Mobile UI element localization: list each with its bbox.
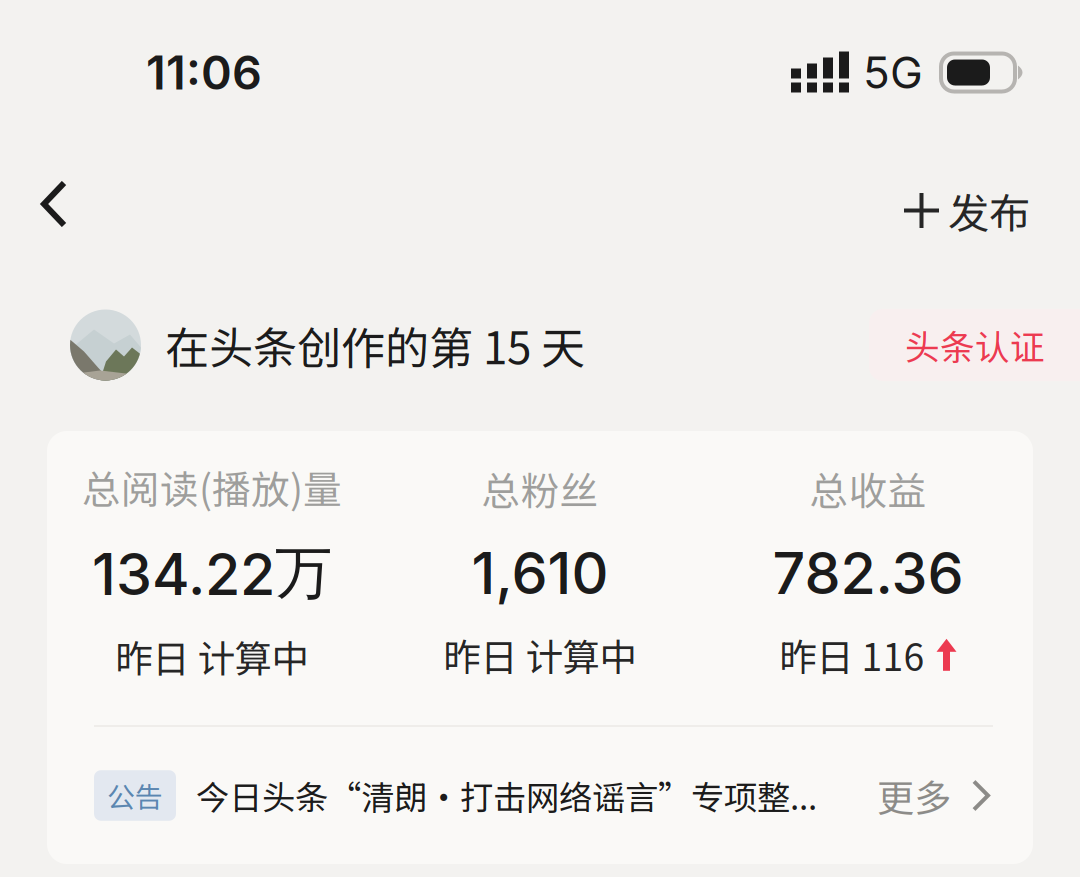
staticText: 总收益 [809, 460, 926, 516]
staticText: 今日头条“清朗·打击网络谣言”专项整... [196, 771, 817, 820]
button[interactable]: 公告 [47, 727, 1033, 864]
staticText: 总粉丝 [481, 460, 598, 516]
staticText: 总阅读(播放)量 [82, 459, 342, 515]
button[interactable]: 发布 [904, 154, 1080, 254]
staticText: 昨日 计算中 [115, 629, 308, 683]
staticText: 公告 [107, 775, 163, 816]
staticText: 134.22万 [92, 537, 332, 609]
staticText: 昨日 116 [779, 628, 924, 682]
staticText: 头条认证 [905, 320, 1045, 370]
staticText: 更多 [877, 768, 951, 823]
button[interactable]: Back [0, 154, 101, 254]
staticText: 在头条创作的第 15 天 [165, 313, 585, 377]
staticText: 发布 [948, 181, 1030, 240]
staticText: 1,610 [471, 538, 608, 608]
staticText: 5G [863, 46, 923, 99]
staticText: 昨日 计算中 [443, 628, 636, 682]
staticText: 11:06 [146, 44, 262, 101]
staticText: 782.36 [772, 538, 963, 608]
